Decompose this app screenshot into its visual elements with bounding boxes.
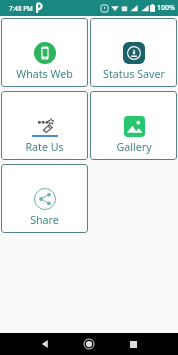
staticText: Rate Us bbox=[25, 140, 64, 155]
button[interactable]: Back bbox=[34, 333, 56, 355]
button[interactable]: Share bbox=[1, 164, 88, 233]
button[interactable]: Whats Web bbox=[1, 18, 88, 87]
staticText: Whats Web bbox=[16, 67, 73, 82]
button[interactable]: Status Saver bbox=[90, 18, 177, 87]
staticText: 7:48 PM bbox=[9, 4, 33, 13]
staticText: 100% bbox=[157, 3, 175, 13]
staticText: Gallery bbox=[116, 140, 152, 155]
button[interactable]: Home bbox=[78, 333, 100, 355]
staticText: Status Saver bbox=[103, 67, 165, 82]
button[interactable]: Recents bbox=[122, 333, 144, 355]
button[interactable]: Gallery bbox=[90, 91, 177, 160]
button[interactable]: Rate Us bbox=[1, 91, 88, 160]
staticText: Share bbox=[30, 213, 59, 228]
